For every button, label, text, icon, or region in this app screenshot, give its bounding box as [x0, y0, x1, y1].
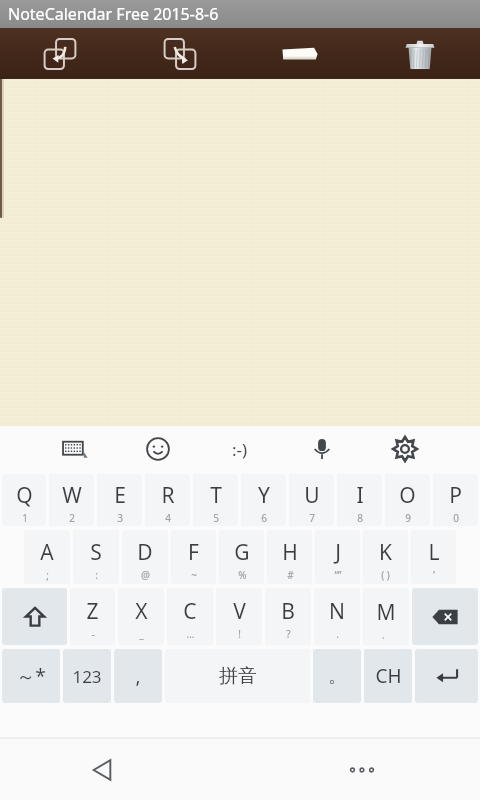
button[interactable]: B [265, 588, 311, 645]
staticText: # [287, 568, 294, 582]
button[interactable]: S [73, 530, 119, 584]
staticText: G [234, 538, 250, 567]
button[interactable]: Q [2, 474, 46, 526]
staticText: 1 [22, 511, 28, 525]
staticText: ～* [16, 663, 46, 689]
button[interactable]: X [118, 588, 164, 645]
staticText: - [91, 627, 95, 641]
staticText: ... [186, 627, 195, 641]
button[interactable]: Back [82, 750, 122, 790]
staticText: 3 [117, 511, 123, 525]
button[interactable]: 拼音 [165, 649, 310, 703]
button[interactable]: Keyboard layout [52, 426, 98, 472]
button[interactable]: J [315, 530, 360, 584]
staticText: E [114, 481, 126, 510]
button[interactable]: V [216, 588, 262, 645]
button[interactable]: C [167, 588, 213, 645]
staticText: . [336, 627, 339, 641]
button[interactable]: E [97, 474, 142, 526]
staticText: F [188, 538, 199, 567]
staticText: W [62, 481, 82, 510]
staticText: T [210, 481, 222, 510]
button[interactable]: Backspace [412, 588, 478, 645]
button[interactable]: W [49, 474, 94, 526]
button[interactable]: Voice input [299, 426, 345, 472]
button[interactable]: Emoticons [217, 426, 263, 472]
staticText: R [161, 481, 175, 510]
button[interactable]: Delete [360, 28, 480, 79]
button[interactable]: Undo [0, 28, 120, 79]
button[interactable]: Eraser [240, 28, 360, 79]
staticText: O [399, 481, 416, 510]
staticText: 。 [328, 664, 347, 688]
staticText: _ [139, 627, 144, 641]
staticText: CH [375, 663, 402, 689]
button[interactable]: O [385, 474, 430, 526]
staticText: 6 [261, 511, 267, 525]
button[interactable]: 123 [63, 649, 111, 703]
staticText: “” [334, 568, 342, 582]
staticText: :-) [232, 438, 248, 461]
staticText: ~ [191, 568, 197, 582]
staticText: N [329, 597, 345, 626]
staticText: ( ) [381, 568, 390, 582]
button[interactable]: Z [70, 588, 115, 645]
staticText: H [282, 538, 298, 567]
staticText: % [238, 568, 247, 582]
staticText: C [183, 597, 197, 626]
staticText: K [379, 538, 392, 567]
button[interactable]: R [145, 474, 190, 526]
button[interactable]: CH [364, 649, 412, 703]
staticText: 7 [309, 511, 315, 525]
staticText: 8 [357, 511, 363, 525]
button[interactable]: Shift [2, 588, 67, 645]
staticText: B [281, 597, 295, 626]
staticText: 0 [453, 511, 459, 525]
button[interactable]: , [114, 649, 162, 703]
staticText: 123 [72, 665, 102, 688]
button[interactable]: U [289, 474, 334, 526]
staticText: U [304, 481, 320, 510]
button[interactable]: ～* [2, 649, 60, 703]
staticText: @ [141, 568, 150, 582]
staticText: L [428, 538, 440, 567]
staticText: J [335, 538, 341, 567]
staticText: M [376, 598, 396, 627]
button[interactable]: I [337, 474, 382, 526]
button[interactable]: H [267, 530, 312, 584]
button[interactable]: Settings [382, 426, 428, 472]
button[interactable]: K [363, 530, 408, 584]
button[interactable]: G [219, 530, 264, 584]
staticText: I [356, 481, 364, 510]
staticText: 、 [381, 628, 391, 641]
button[interactable]: L [411, 530, 456, 584]
staticText: Z [86, 597, 99, 626]
staticText: NoteCalendar Free 2015-8-6 [8, 3, 219, 25]
staticText: 4 [165, 511, 171, 525]
button[interactable]: D [122, 530, 168, 584]
staticText: , [135, 663, 141, 689]
button[interactable]: Emoji [135, 426, 181, 472]
button[interactable]: More options [342, 750, 382, 790]
button[interactable]: P [433, 474, 478, 526]
button[interactable]: N [314, 588, 360, 645]
staticText: Y [258, 481, 270, 510]
button[interactable]: F [171, 530, 216, 584]
button[interactable]: Redo [120, 28, 240, 79]
staticText: 2 [69, 511, 75, 525]
staticText: ! [238, 627, 241, 641]
staticText: S [90, 538, 102, 567]
staticText: ’ [433, 568, 435, 582]
staticText: ? [286, 627, 291, 641]
staticText: 5 [213, 511, 219, 525]
button[interactable]: Enter [415, 649, 478, 703]
button[interactable]: T [193, 474, 238, 526]
staticText: D [137, 538, 153, 567]
button[interactable]: Y [241, 474, 286, 526]
button[interactable]: M [363, 588, 409, 645]
button[interactable]: A [24, 530, 70, 584]
staticText: 9 [405, 511, 411, 525]
staticText: X [135, 597, 148, 626]
button[interactable]: 。 [313, 649, 361, 703]
staticText: : [95, 568, 98, 582]
